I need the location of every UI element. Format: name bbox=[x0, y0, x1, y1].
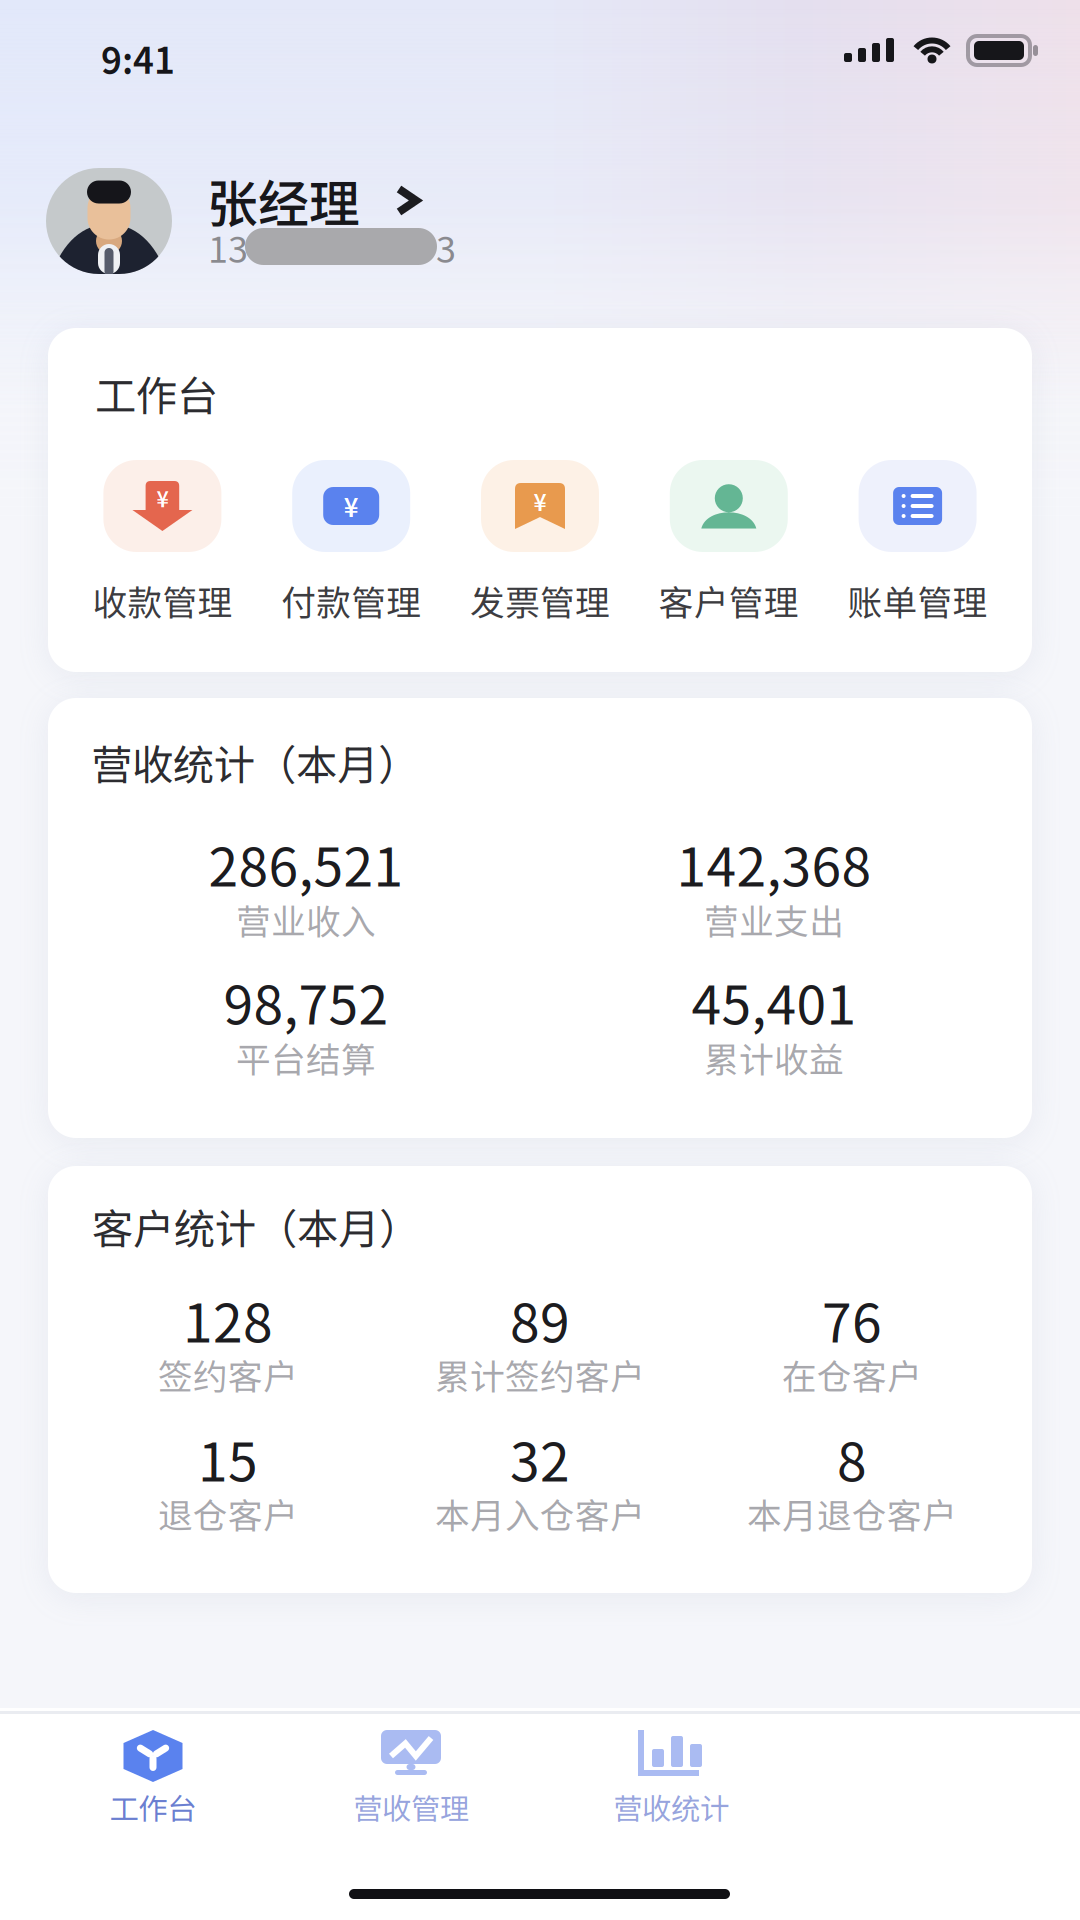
staticText: 128 bbox=[183, 1281, 273, 1358]
button[interactable]: 张经理 bbox=[46, 166, 502, 282]
staticText: ¥ bbox=[533, 485, 546, 517]
staticText: 142,368 bbox=[676, 825, 871, 902]
staticText: 3 bbox=[436, 221, 456, 273]
staticText: 平台结算 bbox=[236, 1032, 376, 1082]
button[interactable]: 账单管理 bbox=[823, 452, 1012, 628]
staticText: ¥ bbox=[156, 483, 168, 513]
staticText: 在仓客户 bbox=[782, 1349, 922, 1399]
staticText: 累计签约客户 bbox=[435, 1349, 645, 1399]
staticText: 9:41 bbox=[101, 32, 175, 84]
button[interactable]: ¥ bbox=[446, 452, 634, 628]
staticText: 营收统计（本月） bbox=[91, 732, 419, 792]
button[interactable]: 工作台 bbox=[23, 1711, 282, 1861]
staticText: 工作台 bbox=[109, 1786, 196, 1828]
button[interactable]: ¥ bbox=[68, 452, 257, 628]
staticText: 收款管理 bbox=[92, 575, 232, 625]
staticText: 营收管理 bbox=[353, 1786, 469, 1828]
staticText: 8 bbox=[837, 1420, 867, 1497]
button[interactable]: 营收管理 bbox=[281, 1711, 540, 1861]
staticText: 本月入仓客户 bbox=[435, 1488, 645, 1538]
staticText: 付款管理 bbox=[281, 575, 421, 625]
staticText: 累计收益 bbox=[704, 1032, 844, 1082]
staticText: 98,752 bbox=[223, 963, 388, 1040]
staticText: 张经理 bbox=[207, 164, 360, 237]
button[interactable]: 营收统计 bbox=[541, 1711, 800, 1861]
staticText: 15 bbox=[198, 1420, 258, 1497]
staticText: 发票管理 bbox=[470, 575, 610, 625]
staticText: 营业收入 bbox=[236, 894, 376, 944]
staticText: 营收统计 bbox=[613, 1786, 729, 1828]
staticText: 76 bbox=[822, 1281, 882, 1358]
staticText: 13 bbox=[208, 221, 248, 273]
staticText: 退仓客户 bbox=[158, 1488, 298, 1538]
staticText: ¥ bbox=[344, 488, 359, 524]
staticText: 客户统计（本月） bbox=[92, 1196, 420, 1256]
staticText: 89 bbox=[510, 1281, 570, 1358]
staticText: 工作台 bbox=[95, 363, 218, 423]
button[interactable]: 客户管理 bbox=[634, 452, 823, 628]
staticText: 本月退仓客户 bbox=[747, 1488, 957, 1538]
button[interactable]: ¥ bbox=[257, 452, 446, 628]
staticText: 32 bbox=[510, 1420, 570, 1497]
staticText: 45,401 bbox=[691, 963, 856, 1040]
staticText: 286,521 bbox=[208, 825, 403, 902]
staticText: 签约客户 bbox=[158, 1349, 298, 1399]
staticText: 账单管理 bbox=[848, 575, 988, 625]
staticText: 客户管理 bbox=[659, 575, 799, 625]
staticText: 营业支出 bbox=[704, 894, 844, 944]
